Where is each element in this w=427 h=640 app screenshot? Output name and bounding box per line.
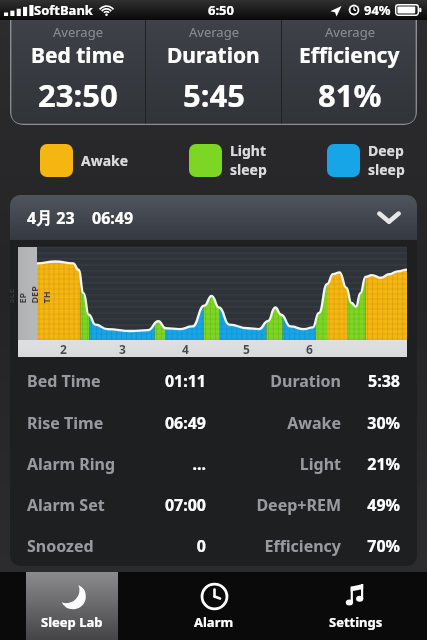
staticText: ... <box>129 453 206 475</box>
staticText: 4月 23 <box>27 207 75 229</box>
staticText: 30% <box>350 412 400 434</box>
staticText: Awake <box>220 412 341 434</box>
button[interactable]: Settings <box>310 572 402 640</box>
staticText: 5 <box>243 341 250 357</box>
staticText: Average <box>189 23 239 41</box>
staticText: Efficiency <box>220 535 341 557</box>
staticText: 70% <box>350 535 400 557</box>
staticText: Light <box>230 141 267 160</box>
staticText: 94% <box>364 1 391 19</box>
button[interactable]: Alarm <box>168 572 260 640</box>
staticText: 4 <box>182 341 189 357</box>
button[interactable]: Average <box>282 20 417 125</box>
staticText: 21% <box>350 453 400 475</box>
staticText: Deep <box>368 141 404 160</box>
button[interactable]: Alarm Set <box>27 484 400 525</box>
staticText: Efficiency <box>299 41 400 70</box>
other: Collapse entry <box>378 211 400 224</box>
staticText: Average <box>53 23 103 41</box>
staticText: 2 <box>60 341 67 357</box>
staticText: 06:49 <box>92 207 134 229</box>
button[interactable]: Rise Time <box>27 402 400 443</box>
staticText: 6:50 <box>208 1 234 19</box>
staticText: 3 <box>119 341 126 357</box>
staticText: Rise Time <box>27 412 104 434</box>
staticText: Settings <box>329 613 383 631</box>
staticText: Awake <box>81 151 129 170</box>
staticText: Duration <box>167 41 260 70</box>
staticText: SLEEP DEPTH <box>10 284 51 303</box>
staticText: 23:50 <box>38 74 118 116</box>
staticText: 81% <box>318 74 382 116</box>
button[interactable]: Average <box>10 20 145 125</box>
staticText: 0 <box>129 535 206 557</box>
staticText: Alarm <box>194 613 234 631</box>
staticText: Deep+REM <box>220 494 341 516</box>
staticText: Bed time <box>31 41 125 70</box>
button[interactable]: Average <box>146 20 281 125</box>
staticText: Duration <box>220 370 341 392</box>
staticText: Snoozed <box>27 535 94 557</box>
staticText: SoftBank <box>34 1 93 19</box>
staticText: 01:11 <box>129 370 206 392</box>
staticText: Alarm Ring <box>27 453 116 475</box>
staticText: Average <box>325 23 375 41</box>
button[interactable]: Sleep Lab <box>26 572 118 640</box>
staticText: 07:00 <box>129 494 206 516</box>
button[interactable]: Alarm Ring <box>27 443 400 484</box>
staticText: 6 <box>306 341 313 357</box>
staticText: 49% <box>350 494 400 516</box>
button[interactable]: Bed Time <box>27 360 400 402</box>
staticText: sleep <box>230 160 267 179</box>
staticText: Alarm Set <box>27 494 105 516</box>
staticText: Bed Time <box>27 370 101 392</box>
staticText: 5:38 <box>350 370 400 392</box>
staticText: 5:45 <box>183 74 245 116</box>
staticText: Sleep Lab <box>41 613 103 631</box>
staticText: sleep <box>368 160 405 179</box>
button[interactable]: 4月 23 <box>10 195 417 240</box>
button[interactable]: Snoozed <box>27 525 400 566</box>
staticText: 06:49 <box>129 412 206 434</box>
staticText: Light <box>220 453 341 475</box>
